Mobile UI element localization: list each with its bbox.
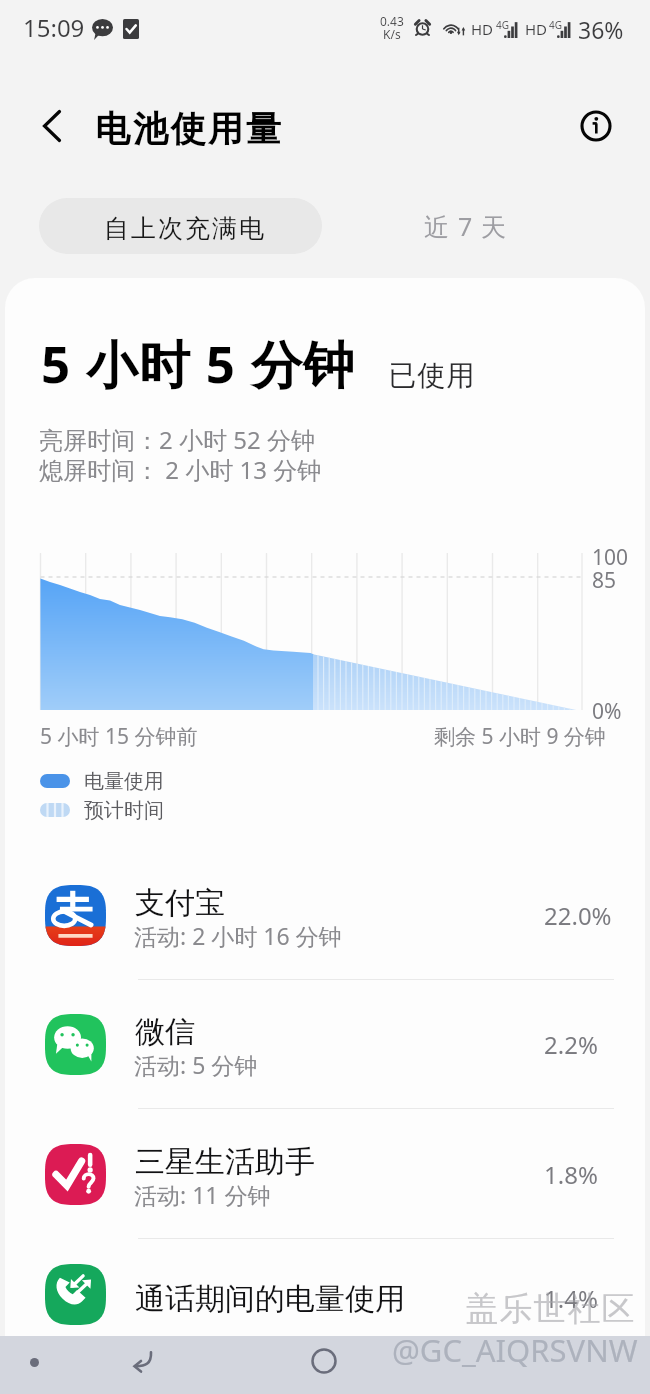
button[interactable]: 自上次充满电 [39, 198, 322, 254]
staticText: 100 [592, 543, 629, 572]
button[interactable]: Back [20, 94, 84, 158]
staticText: 电量使用 [84, 769, 164, 794]
staticText: 5 小时 5 分钟 [41, 328, 356, 398]
staticText: 亮屏时间：2 小时 52 分钟 [39, 423, 315, 456]
staticText: 活动: 11 分钟 [134, 1179, 271, 1210]
staticText: @GC_AIQRSVNW [392, 1329, 638, 1371]
staticText: 盖乐世社区 [465, 1288, 635, 1330]
button[interactable]: 通话期间的电量使用 [0, 1240, 650, 1350]
staticText: 1.4% [544, 1282, 598, 1315]
staticText: 0.43 [380, 13, 404, 29]
staticText: 36% [578, 14, 624, 45]
staticText: K/s [383, 26, 401, 42]
staticText: HD [471, 19, 494, 39]
staticText: 三星生活助手 [135, 1143, 315, 1181]
staticText: 微信 [135, 1013, 195, 1051]
button[interactable]: 近 7 天 [363, 198, 569, 254]
button[interactable]: Back [88, 1336, 196, 1394]
button[interactable]: 微信 [0, 990, 650, 1100]
staticText: 自上次充满电 [103, 213, 265, 244]
staticText: 5 小时 15 分钟前 [40, 722, 198, 751]
staticText: 已使用 [388, 358, 475, 393]
staticText: 活动: 5 分钟 [134, 1049, 258, 1080]
staticText: 22.0% [544, 899, 612, 932]
staticText: 活动: 2 小时 16 分钟 [134, 920, 342, 951]
staticText: 近 7 天 [424, 209, 508, 243]
button[interactable]: Home [270, 1336, 378, 1394]
button[interactable]: 三星生活助手 [0, 1120, 650, 1230]
staticText: 预计时间 [84, 798, 164, 823]
staticText: HD [525, 19, 548, 39]
staticText: 85 [592, 566, 617, 595]
button[interactable]: Recents [0, 1336, 68, 1394]
staticText: 电池使用量 [94, 107, 282, 151]
staticText: 剩余 5 小时 9 分钟 [434, 722, 606, 751]
staticText: 4G [496, 18, 509, 32]
button[interactable]: 支付宝 [0, 861, 650, 971]
staticText: 通话期间的电量使用 [135, 1280, 405, 1318]
staticText: 0% [592, 697, 622, 726]
staticText: 1.8% [544, 1158, 598, 1191]
staticText: 熄屏时间： 2 小时 13 分钟 [39, 453, 322, 486]
staticText: 2.2% [544, 1028, 598, 1061]
staticText: 支付宝 [135, 884, 225, 922]
button[interactable]: Info [572, 102, 620, 150]
staticText: 4G [549, 18, 562, 32]
staticText: 15:09 [23, 11, 85, 44]
